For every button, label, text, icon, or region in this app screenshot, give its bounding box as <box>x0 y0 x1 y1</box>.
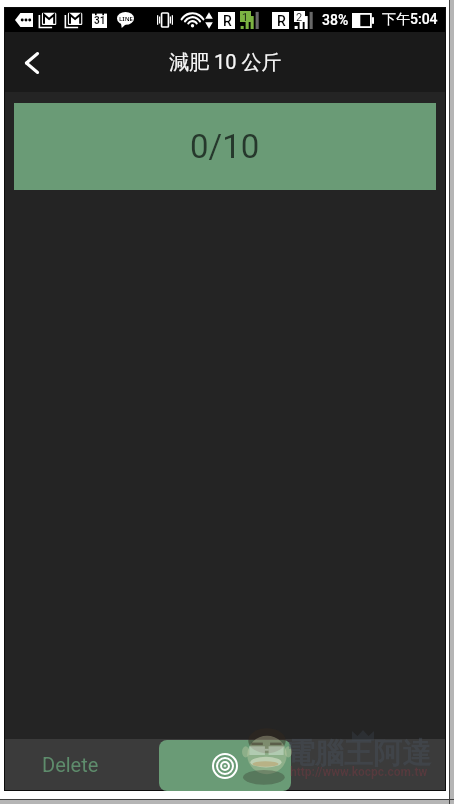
button[interactable]: Back <box>6 37 58 89</box>
staticText: 1 <box>242 11 249 22</box>
staticText: R <box>277 13 286 29</box>
staticText: 2 <box>296 11 303 22</box>
button[interactable]: Set target <box>159 740 291 791</box>
staticText: http://www.kocpc.com.tw <box>290 765 428 779</box>
staticText: 0/10 <box>190 127 260 166</box>
staticText: 電腦王阿達 <box>286 735 431 772</box>
staticText: R <box>223 13 232 29</box>
button[interactable]: Delete <box>19 739 122 790</box>
staticText: 減肥 10 公斤 <box>169 50 282 75</box>
staticText: LINE <box>119 15 133 23</box>
button[interactable]: 0/10 <box>14 103 436 190</box>
staticText: 38% <box>322 12 349 28</box>
staticText: 31 <box>94 15 106 27</box>
staticText: Delete <box>42 753 99 776</box>
staticText: 下午5:04 <box>382 11 438 29</box>
